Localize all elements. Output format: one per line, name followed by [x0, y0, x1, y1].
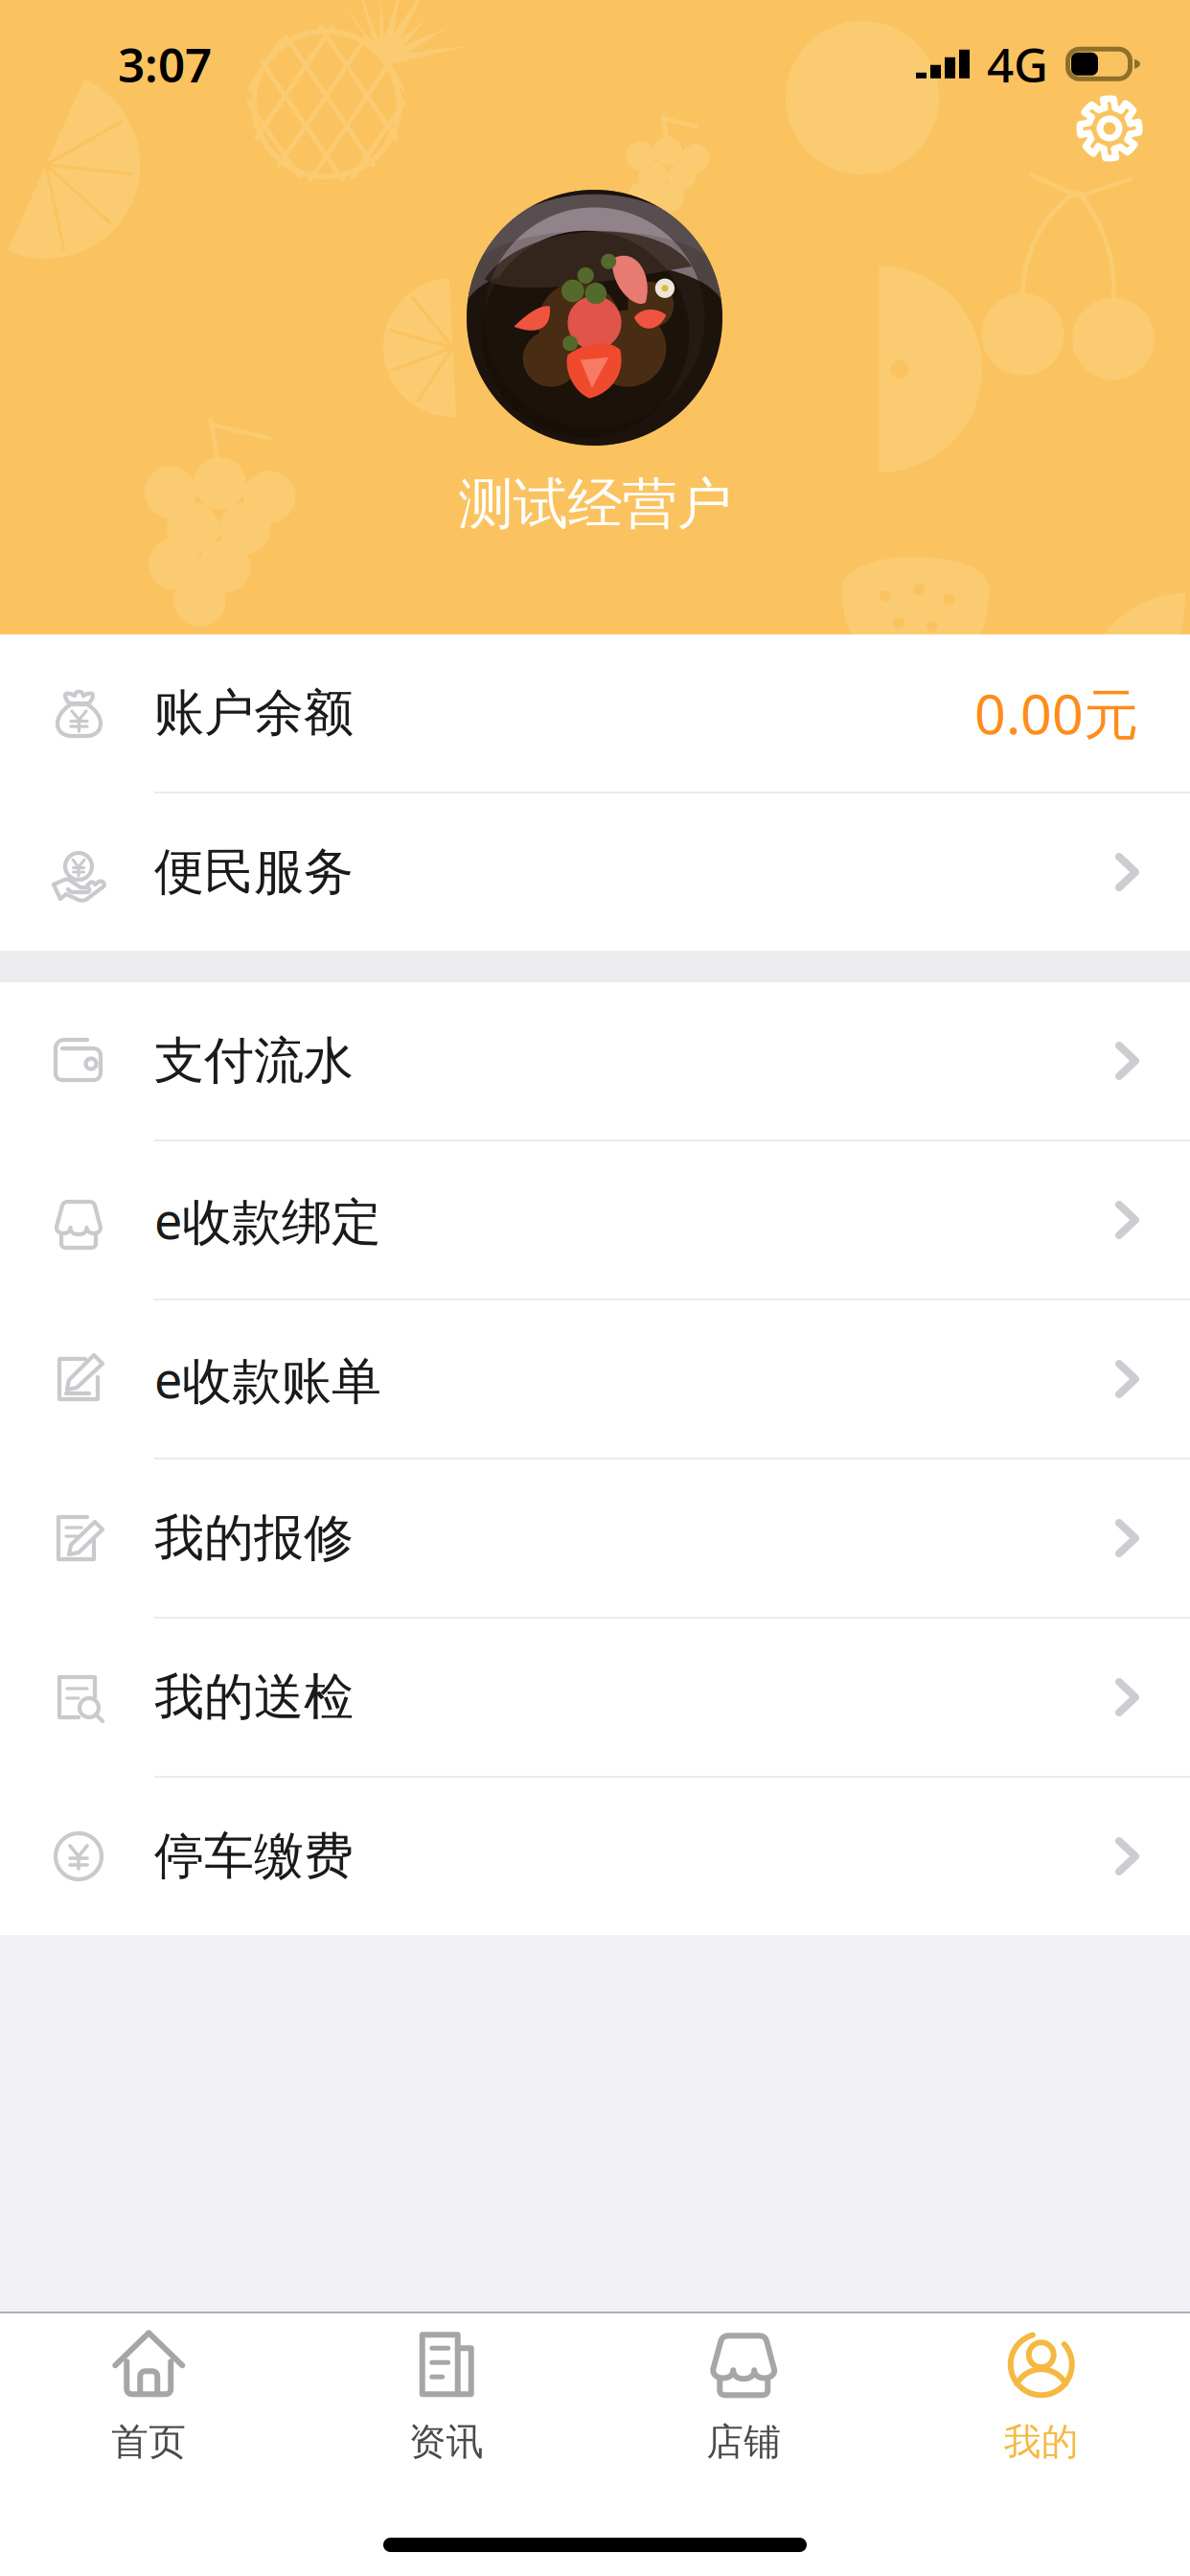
staticText: 账户余额 — [154, 682, 354, 744]
button[interactable]: 支付流水 — [0, 982, 1190, 1141]
button[interactable]: Settings — [1060, 79, 1159, 178]
staticText: 我的 — [1004, 2419, 1079, 2465]
staticText: 支付流水 — [154, 1030, 354, 1092]
button[interactable]: 首页 — [0, 2318, 297, 2473]
staticText: 停车缴费 — [154, 1826, 354, 1887]
staticText: 资讯 — [409, 2419, 484, 2465]
button[interactable]: e收款账单 — [0, 1300, 1190, 1460]
staticText: 我的送检 — [154, 1667, 354, 1728]
button[interactable]: 我的 — [892, 2318, 1190, 2473]
staticText: 测试经营户 — [458, 471, 732, 538]
staticText: 4G — [987, 33, 1048, 95]
staticText: 便民服务 — [154, 842, 354, 903]
button[interactable]: 资讯 — [297, 2318, 595, 2473]
staticText: 0.00元 — [974, 676, 1138, 749]
button[interactable]: 账户余额 — [0, 634, 1190, 793]
button[interactable]: 便民服务 — [0, 793, 1190, 951]
staticText: e收款绑定 — [154, 1187, 381, 1253]
button[interactable]: 我的送检 — [0, 1619, 1190, 1778]
staticText: 我的报修 — [154, 1508, 354, 1569]
staticText: 3:07 — [118, 33, 212, 95]
button[interactable]: 停车缴费 — [0, 1778, 1190, 1935]
staticText: 首页 — [111, 2419, 186, 2465]
button[interactable]: 店铺 — [595, 2318, 892, 2473]
button[interactable]: 我的报修 — [0, 1460, 1190, 1619]
staticText: e收款账单 — [154, 1346, 381, 1412]
button[interactable]: e收款绑定 — [0, 1141, 1190, 1300]
staticText: 店铺 — [706, 2419, 781, 2465]
